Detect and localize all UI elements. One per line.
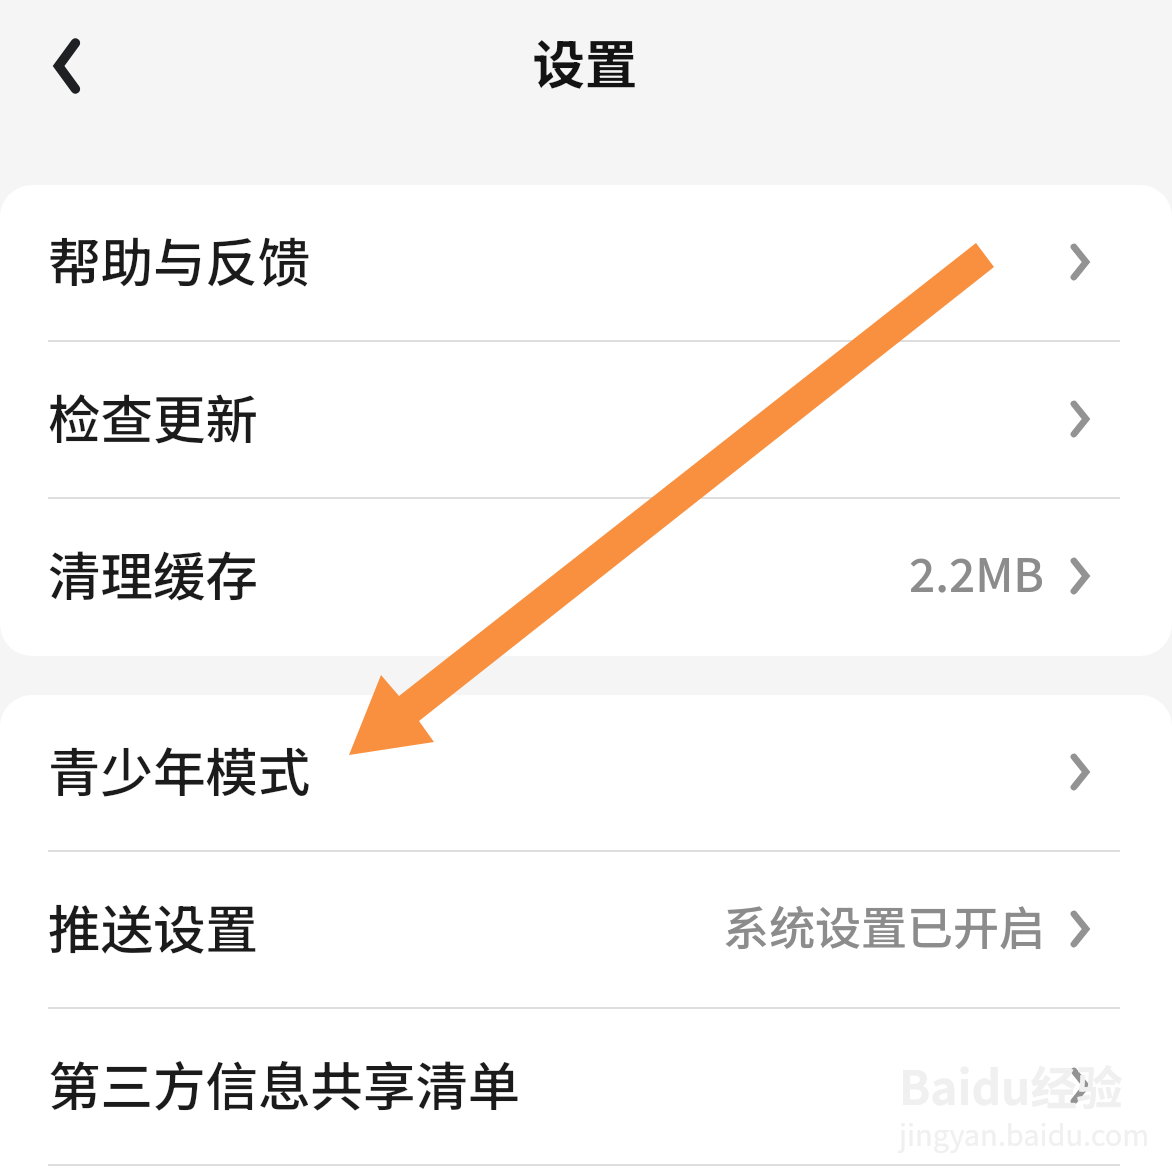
staticText: 帮助与反馈: [48, 221, 311, 297]
button[interactable]: 青少年模式: [0, 695, 1172, 852]
staticText: 设置: [0, 23, 1171, 99]
button[interactable]: Back: [37, 31, 97, 101]
staticText: 2.2MB: [909, 539, 1045, 606]
staticText: 系统设置已开启: [723, 892, 1045, 959]
button[interactable]: 清理缓存: [0, 499, 1172, 656]
button[interactable]: 推送设置: [0, 852, 1172, 1009]
staticText: 推送设置: [48, 888, 259, 964]
staticText: 青少年模式: [48, 731, 311, 807]
button[interactable]: 第三方信息共享清单: [0, 1009, 1172, 1166]
button[interactable]: 帮助与反馈: [0, 185, 1172, 342]
staticText: 检查更新: [48, 378, 259, 454]
staticText: Baidu经验: [899, 1052, 1123, 1119]
staticText: 第三方信息共享清单: [48, 1045, 521, 1121]
staticText: 清理缓存: [48, 535, 259, 611]
staticText: jingyan.baidu.com: [899, 1112, 1150, 1154]
button[interactable]: 检查更新: [0, 342, 1172, 499]
